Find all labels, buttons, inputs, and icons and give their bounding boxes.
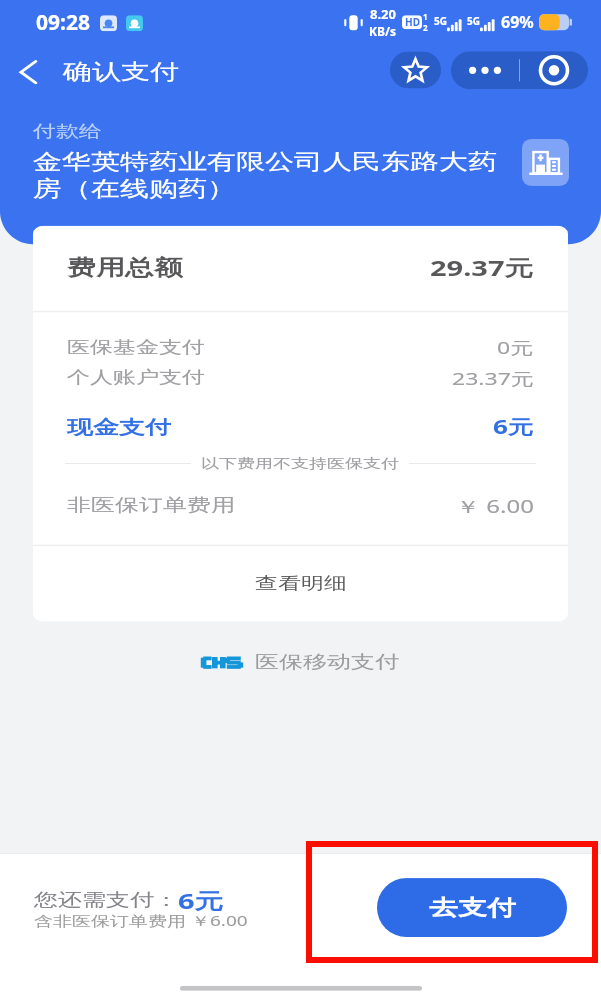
staticText: 2	[423, 22, 428, 33]
staticText: 23.37元	[452, 366, 534, 389]
staticText: 6元	[178, 886, 224, 913]
staticText: 5G	[434, 14, 447, 28]
button[interactable]: 查看明细	[33, 545, 568, 622]
staticText: 付款给	[33, 121, 102, 142]
staticText: 确认支付	[63, 58, 179, 86]
staticText: 医保基金支付	[67, 337, 205, 358]
button[interactable]: 更多	[451, 51, 519, 89]
staticText: 非医保订单费用	[67, 494, 235, 516]
staticText: 09:28	[36, 8, 90, 37]
staticText: 1	[423, 11, 428, 22]
staticText: 现金支付	[67, 415, 171, 439]
button[interactable]: 返回	[5, 50, 51, 94]
staticText: 个人账户支付	[67, 367, 205, 388]
staticText: 29.37元	[430, 253, 534, 283]
staticText: HD	[405, 15, 420, 29]
staticText: 8.20	[370, 5, 396, 23]
staticText: 0元	[497, 336, 534, 359]
staticText: 医保移动支付	[255, 651, 399, 673]
staticText: 69%	[501, 11, 534, 33]
staticText: 以下费用不支持医保支付	[201, 455, 399, 472]
staticText: 费用总额	[67, 255, 183, 282]
staticText: 6元	[493, 414, 534, 440]
button[interactable]: 关闭	[520, 51, 587, 89]
staticText: 您还需支付：	[34, 889, 178, 911]
staticText: ￥ 6.00	[456, 494, 534, 518]
staticText: 5G	[467, 14, 480, 28]
button[interactable]: 去支付	[377, 878, 567, 937]
staticText: 金华英特药业有限公司人民东路大药房（在线购药）	[33, 148, 503, 203]
staticText: 查看明细	[255, 573, 347, 594]
button[interactable]: 收藏	[390, 51, 441, 88]
staticText: 含非医保订单费用 ￥6.00	[34, 912, 248, 931]
staticText: KB/s	[369, 23, 396, 39]
staticText: 去支付	[429, 894, 516, 921]
